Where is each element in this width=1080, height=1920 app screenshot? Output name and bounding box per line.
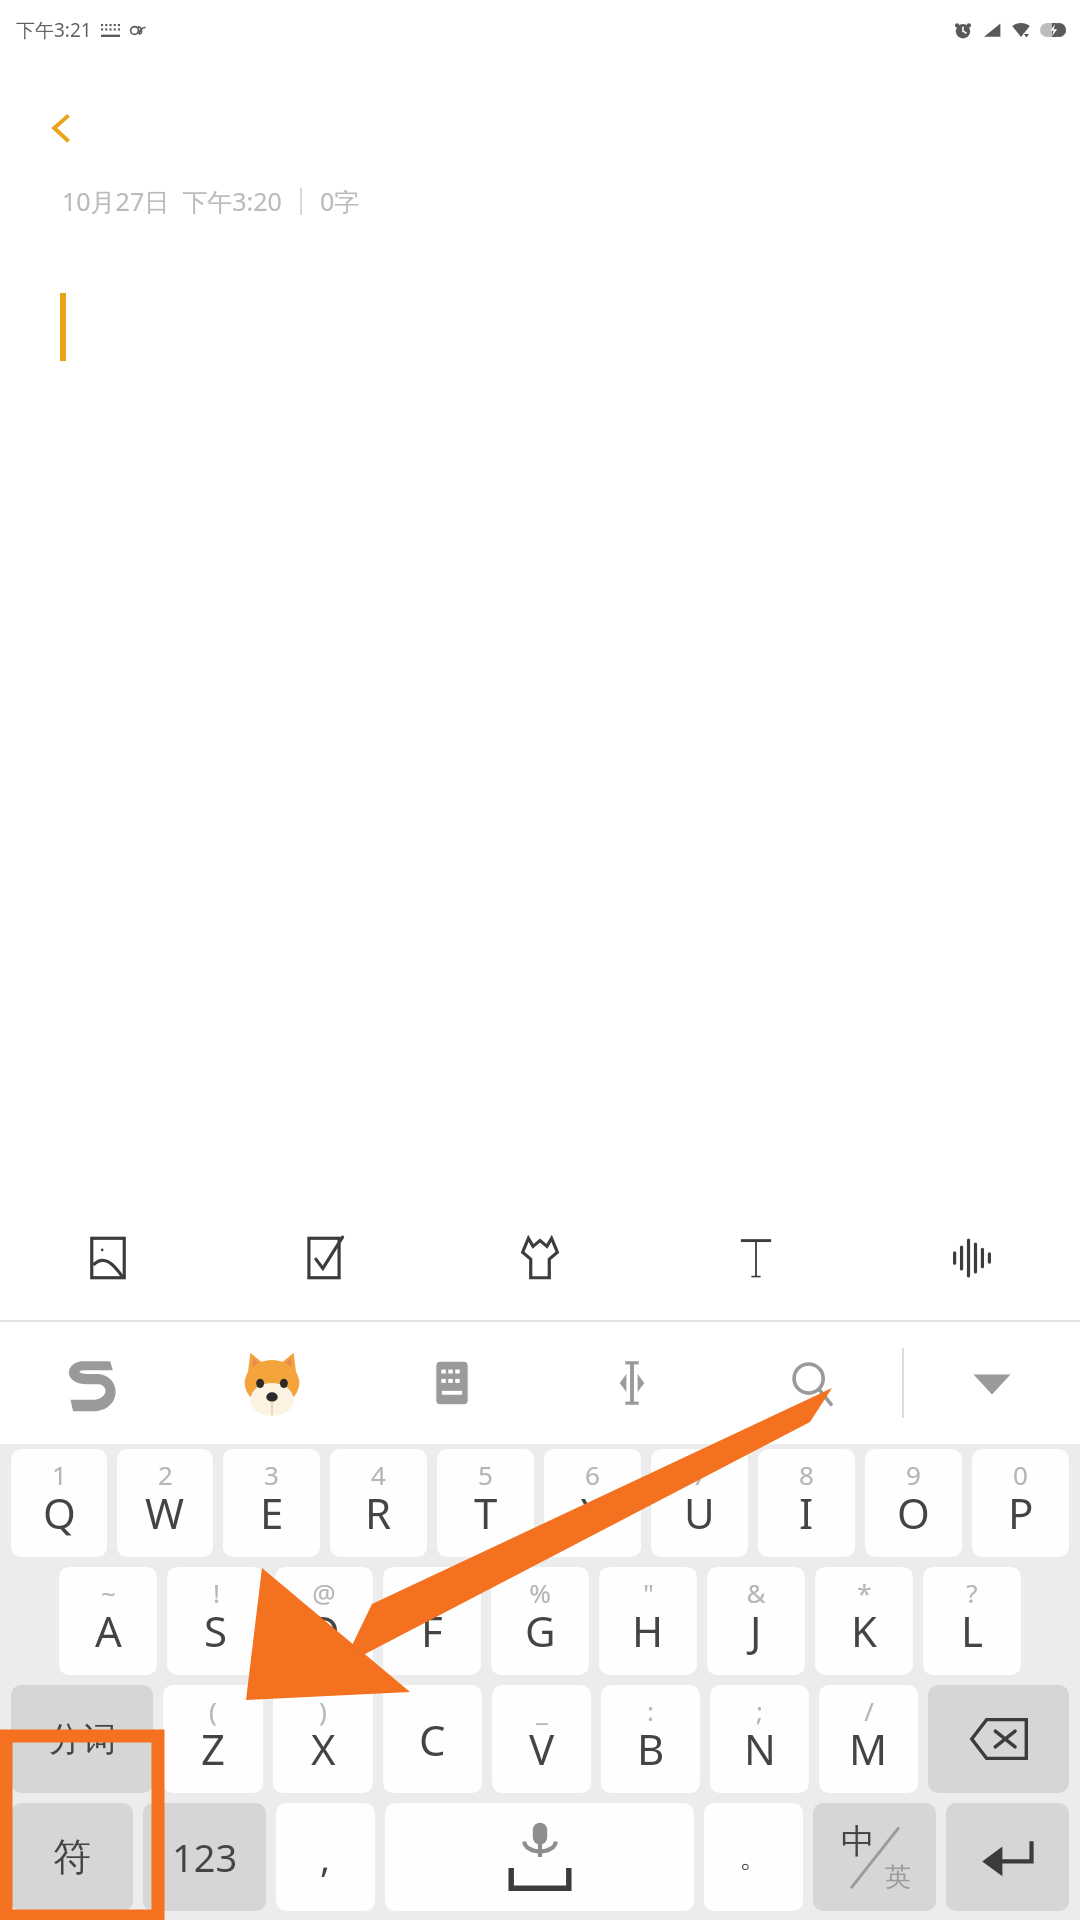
staticText: N xyxy=(744,1720,776,1777)
button[interactable]: ; xyxy=(710,1685,809,1793)
staticText: O xyxy=(897,1484,930,1541)
staticText: ! xyxy=(213,1575,220,1610)
button[interactable]: # xyxy=(383,1567,481,1675)
staticText: X xyxy=(311,1720,336,1777)
button[interactable]: Emoji xyxy=(181,1322,362,1444)
staticText: / xyxy=(864,1693,874,1728)
button[interactable]: ~ xyxy=(59,1567,157,1675)
staticText: 6 xyxy=(585,1457,600,1492)
button[interactable]: : xyxy=(601,1685,700,1793)
staticText: M xyxy=(849,1720,888,1777)
staticText: F xyxy=(421,1602,443,1659)
staticText: ~ xyxy=(101,1575,116,1610)
staticText: 中 xyxy=(841,1820,875,1863)
staticText: S xyxy=(204,1602,228,1659)
button[interactable]: 123 xyxy=(143,1803,266,1911)
staticText: 英 xyxy=(885,1861,911,1894)
staticText: _ xyxy=(536,1693,548,1728)
staticText: Q xyxy=(43,1484,76,1541)
button[interactable]: 5 xyxy=(437,1449,534,1557)
button[interactable]: & xyxy=(707,1567,805,1675)
staticText: 2 xyxy=(158,1457,173,1492)
button[interactable]: ! xyxy=(167,1567,265,1675)
button[interactable]: Back xyxy=(34,100,90,156)
button[interactable]: 分词 xyxy=(11,1685,153,1793)
button[interactable]: 6 xyxy=(544,1449,641,1557)
button[interactable]: Switch Chinese English xyxy=(813,1803,936,1911)
other: Enter xyxy=(980,1835,1036,1879)
staticText: * xyxy=(857,1575,872,1610)
button[interactable]: Checklist xyxy=(216,1196,432,1320)
button[interactable]: , xyxy=(276,1803,375,1911)
staticText: 5 xyxy=(478,1457,493,1492)
staticText: T xyxy=(474,1484,498,1541)
button[interactable]: ( xyxy=(163,1685,263,1793)
staticText: , xyxy=(320,1831,331,1883)
staticText: " xyxy=(643,1575,654,1610)
staticText: J xyxy=(750,1602,762,1659)
button[interactable]: Space xyxy=(385,1803,694,1911)
staticText: R xyxy=(365,1484,392,1541)
staticText: 3 xyxy=(264,1457,279,1492)
button[interactable]: 8 xyxy=(758,1449,855,1557)
button[interactable]: Delete xyxy=(928,1685,1069,1793)
staticText: 0 xyxy=(1013,1457,1028,1492)
staticText: Z xyxy=(201,1720,226,1777)
staticText: K xyxy=(851,1602,877,1659)
staticText: D xyxy=(309,1602,340,1659)
button[interactable]: 9 xyxy=(865,1449,962,1557)
staticText: P xyxy=(1008,1484,1034,1541)
staticText: G xyxy=(525,1602,556,1659)
button[interactable]: Insert image xyxy=(0,1196,216,1320)
staticText: W xyxy=(145,1484,185,1541)
button[interactable]: 3 xyxy=(223,1449,320,1557)
button[interactable]: % xyxy=(491,1567,589,1675)
staticText: @ xyxy=(312,1575,336,1610)
button[interactable]: 符 xyxy=(11,1803,133,1911)
staticText: 0字 xyxy=(320,184,360,218)
staticText: ? xyxy=(966,1575,978,1610)
button[interactable]: Move cursor xyxy=(542,1322,722,1444)
button[interactable]: Text format xyxy=(648,1196,864,1320)
staticText: ; xyxy=(756,1693,763,1728)
button[interactable]: 1 xyxy=(11,1449,107,1557)
button[interactable]: Sogou xyxy=(0,1322,181,1444)
button[interactable]: @ xyxy=(275,1567,373,1675)
staticText: 10月27日 下午3:20 xyxy=(62,184,282,218)
button[interactable]: 2 xyxy=(117,1449,213,1557)
staticText: 1 xyxy=(52,1457,67,1492)
button[interactable]: _ xyxy=(492,1685,591,1793)
button[interactable]: C xyxy=(383,1685,482,1793)
staticText: 123 xyxy=(172,1831,238,1883)
button[interactable]: Enter xyxy=(946,1803,1069,1911)
staticText: % xyxy=(529,1575,551,1610)
button[interactable]: Hide keyboard xyxy=(904,1322,1080,1444)
other: Switch Chinese English xyxy=(835,1820,915,1894)
button[interactable]: 。 xyxy=(704,1803,803,1911)
button[interactable]: 0 xyxy=(972,1449,1069,1557)
button[interactable]: Keyboard xyxy=(362,1322,542,1444)
button[interactable]: ) xyxy=(273,1685,373,1793)
button[interactable]: Search xyxy=(722,1322,902,1444)
staticText: L xyxy=(961,1602,984,1659)
button[interactable]: * xyxy=(815,1567,913,1675)
button[interactable]: Voice xyxy=(864,1196,1080,1320)
staticText: 。 xyxy=(739,1838,769,1876)
staticText: # xyxy=(424,1575,441,1610)
staticText: : xyxy=(647,1693,654,1728)
button[interactable]: " xyxy=(599,1567,697,1675)
other: Delete xyxy=(968,1717,1030,1761)
button[interactable]: Style xyxy=(432,1196,648,1320)
staticText: 分词 xyxy=(48,1718,116,1761)
button[interactable]: ? xyxy=(923,1567,1021,1675)
staticText: 8 xyxy=(799,1457,814,1492)
staticText: I xyxy=(799,1484,814,1541)
staticText: B xyxy=(637,1720,665,1777)
staticText: 下午3:21 xyxy=(16,17,92,43)
button[interactable]: / xyxy=(819,1685,918,1793)
button[interactable]: 7 xyxy=(651,1449,748,1557)
staticText: E xyxy=(260,1484,284,1541)
staticText: 4 xyxy=(371,1457,386,1492)
staticText: V xyxy=(529,1720,555,1777)
button[interactable]: 4 xyxy=(330,1449,427,1557)
